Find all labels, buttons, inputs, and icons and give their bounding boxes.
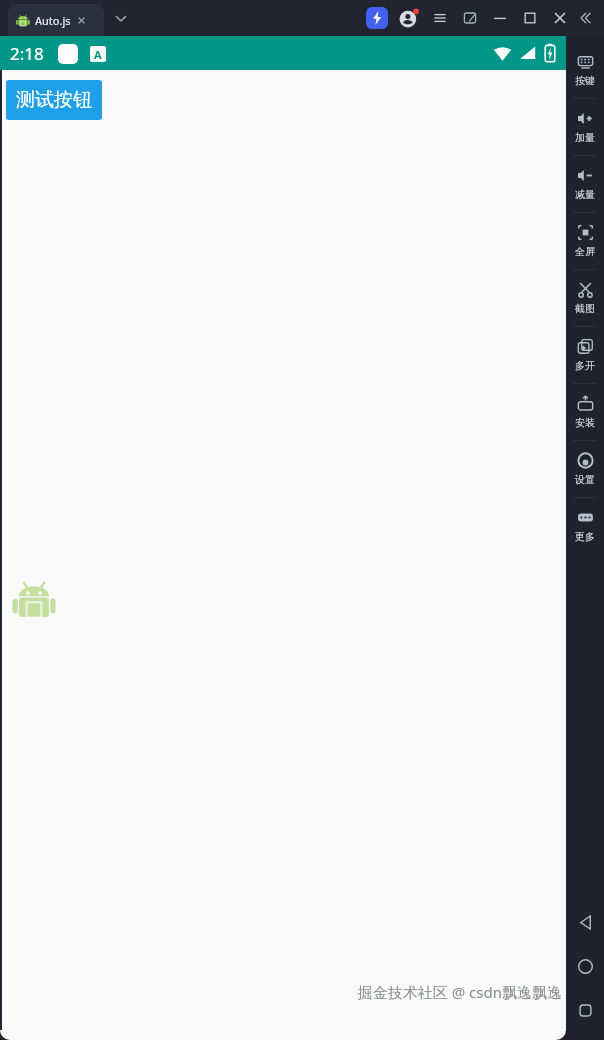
staticText: 多开 [575, 359, 595, 372]
button[interactable]: Home [566, 944, 604, 988]
button[interactable]: 测试按钮 [6, 80, 102, 120]
staticText: Auto.js [35, 13, 71, 28]
button[interactable]: 更多 [566, 498, 604, 554]
staticText: 截图 [575, 302, 595, 315]
staticText: 2:18 [10, 42, 44, 65]
button[interactable]: Back [566, 900, 604, 944]
button[interactable]: Close [550, 8, 570, 28]
button[interactable]: Boost [366, 7, 388, 29]
button[interactable]: Account [398, 7, 420, 29]
button[interactable]: Tab list [110, 7, 132, 29]
staticText: 更多 [575, 530, 595, 543]
staticText: 加量 [575, 131, 595, 144]
staticText: A [94, 47, 102, 62]
button[interactable]: 设置 [566, 441, 604, 497]
button[interactable]: 加量 [566, 99, 604, 155]
button[interactable]: 全屏 [566, 213, 604, 269]
button[interactable]: 减量 [566, 156, 604, 212]
button[interactable]: Maximize [520, 8, 540, 28]
staticText: 掘金技术社区 @ csdn飘逸飘逸 [357, 982, 562, 1002]
button[interactable]: Auto.js [8, 4, 104, 36]
button[interactable]: Collapse [578, 8, 598, 28]
staticText: 减量 [575, 188, 595, 201]
staticText: 测试按钮 [16, 88, 92, 112]
button[interactable]: Recents [566, 988, 604, 1032]
button[interactable]: 安装 [566, 384, 604, 440]
button[interactable]: 截图 [566, 270, 604, 326]
button[interactable]: 多开 [566, 327, 604, 383]
staticText: 全屏 [575, 245, 595, 258]
button[interactable]: Resize [460, 8, 480, 28]
staticText: 安装 [575, 416, 595, 429]
button[interactable]: Menu [430, 8, 450, 28]
staticText: 设置 [575, 473, 595, 486]
button[interactable]: Close tab [75, 14, 88, 27]
staticText: 按键 [575, 74, 595, 87]
button[interactable]: Minimize [490, 8, 510, 28]
button[interactable]: 按键 [566, 42, 604, 98]
